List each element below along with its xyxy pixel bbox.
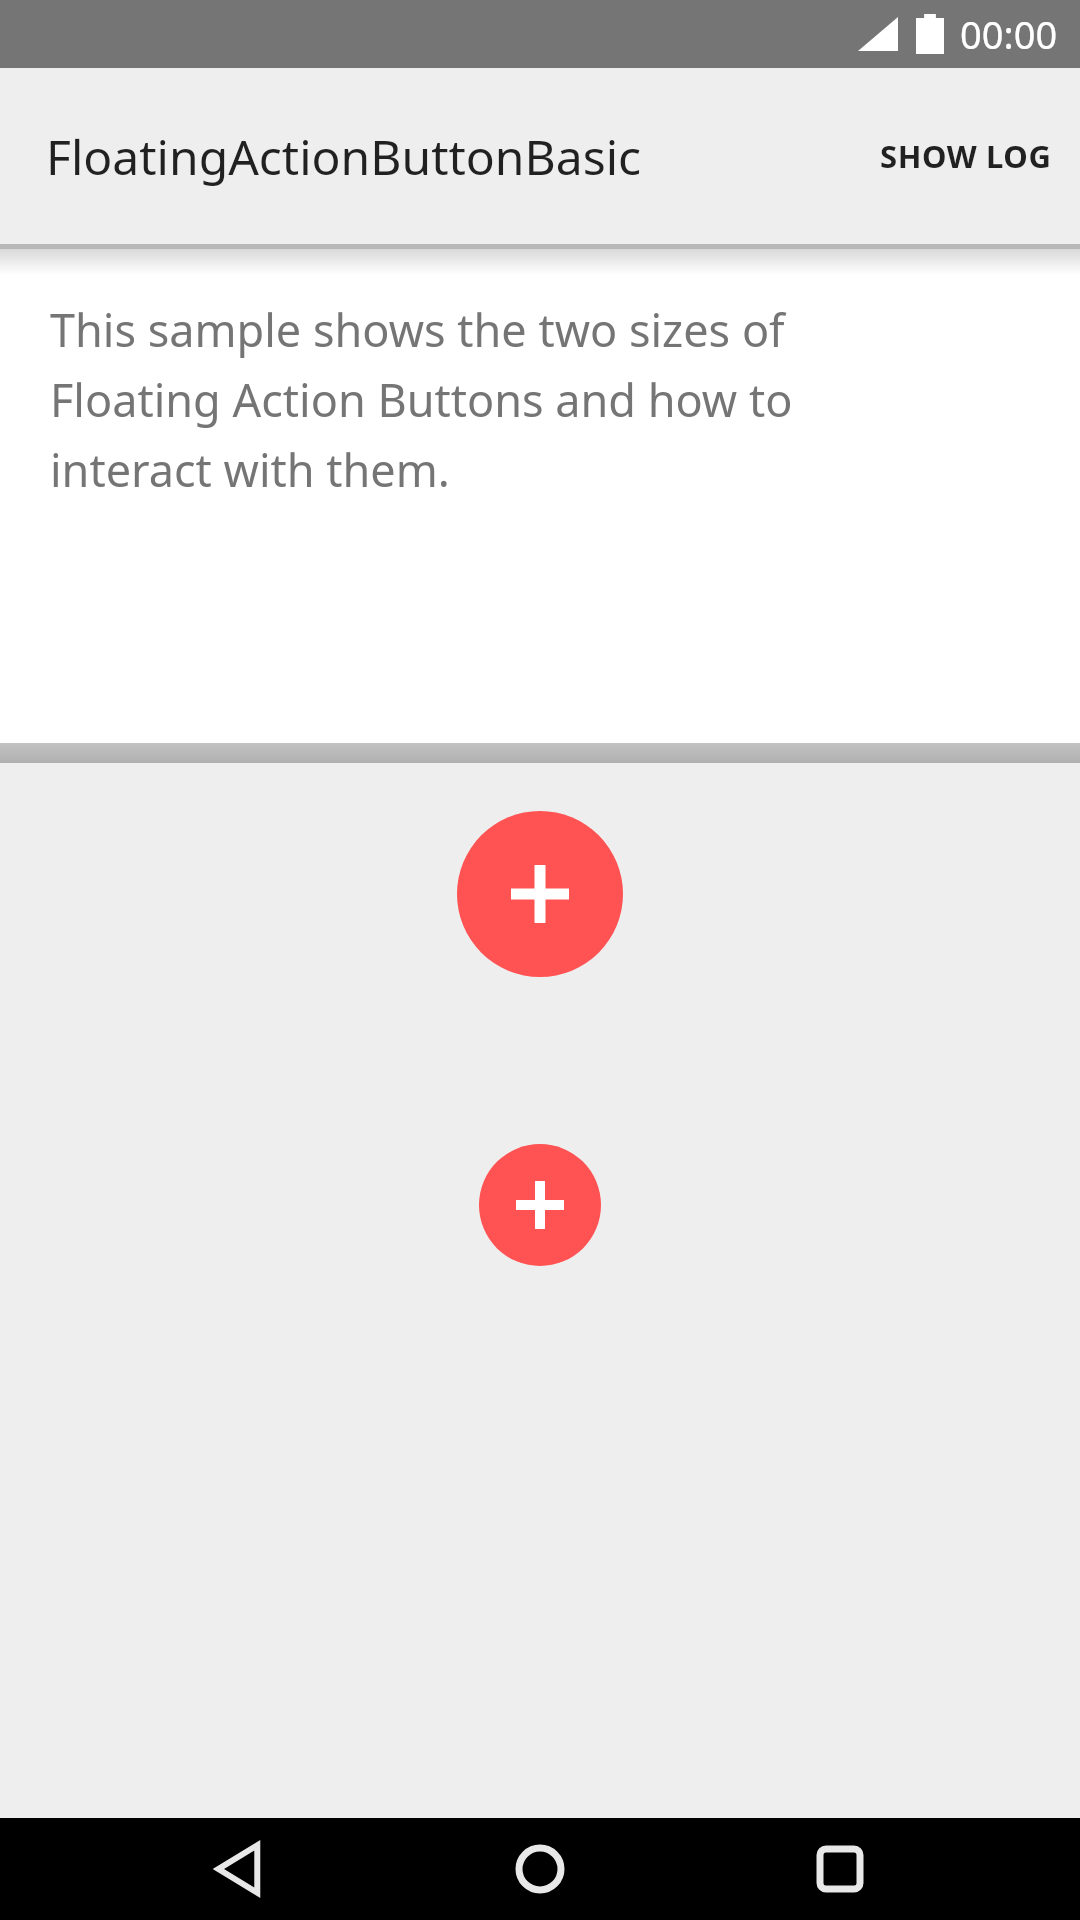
button[interactable]: Home (470, 1818, 610, 1920)
staticText: This sample shows the two sizes of Float… (50, 299, 958, 500)
button[interactable]: Add small (479, 1144, 601, 1266)
staticText: 00:00 (960, 8, 1058, 60)
button[interactable]: SHOW LOG (852, 109, 1080, 203)
staticText: FloatingActionButtonBasic (46, 124, 642, 189)
button[interactable]: Recents (770, 1818, 910, 1920)
staticText: SHOW LOG (880, 135, 1052, 177)
button[interactable]: Back (170, 1818, 310, 1920)
button[interactable]: Add (457, 811, 623, 977)
